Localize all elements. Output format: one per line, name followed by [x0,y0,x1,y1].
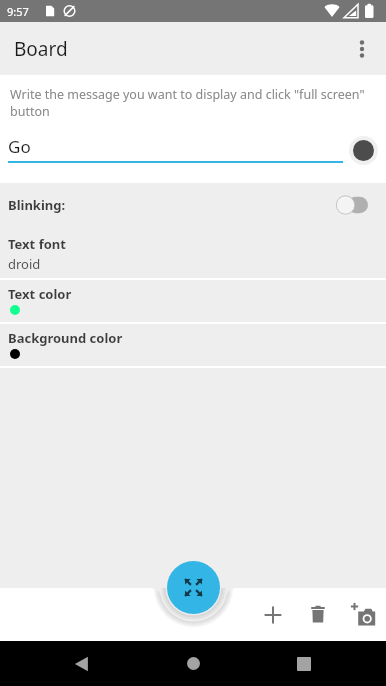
button[interactable]: Recents [278,641,330,686]
button[interactable]: Blinking: [0,183,386,227]
button[interactable]: Home [167,641,219,686]
button[interactable]: Add [251,588,295,641]
staticText: Text font [8,235,66,253]
button[interactable]: Blinking toggle [336,193,370,217]
button[interactable]: Background color [0,324,386,366]
button[interactable]: Pick text color [349,136,378,165]
button[interactable]: Text font [0,227,386,278]
button[interactable]: Text color [0,280,386,322]
staticText: Write the message you want to display an… [10,86,365,119]
button[interactable]: More options [338,25,386,73]
button[interactable]: Delete [296,588,340,641]
staticText: Background color [8,329,123,347]
staticText: Board [14,36,68,62]
button[interactable]: Add photo [342,588,386,641]
staticText: Go [8,135,31,158]
button[interactable]: Back [55,641,107,686]
staticText: droid [8,255,41,273]
staticText: 9:57 [7,4,29,19]
staticText: Text color [8,285,72,303]
staticText: Blinking: [8,196,66,214]
button[interactable]: Full screen [167,561,220,614]
